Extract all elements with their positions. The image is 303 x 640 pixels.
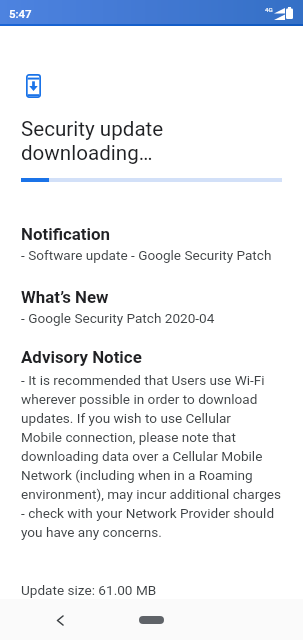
staticText: Security update downloading… xyxy=(21,117,164,165)
staticText: Update size: 61.00 MB xyxy=(21,582,157,598)
staticText: - Google Security Patch 2020-04 xyxy=(21,310,215,326)
staticText: Advisory Notice xyxy=(21,347,142,367)
staticText: Notification xyxy=(21,224,111,244)
staticText: What’s New xyxy=(21,287,109,307)
staticText: - It is recommended that Users use Wi-Fi… xyxy=(21,372,282,540)
button[interactable]: Back xyxy=(46,606,74,634)
staticText: 4G xyxy=(265,6,273,13)
staticText: - Software update - Google Security Patc… xyxy=(21,247,272,263)
button[interactable]: Home xyxy=(139,616,164,624)
staticText: 5:47 xyxy=(9,7,32,20)
